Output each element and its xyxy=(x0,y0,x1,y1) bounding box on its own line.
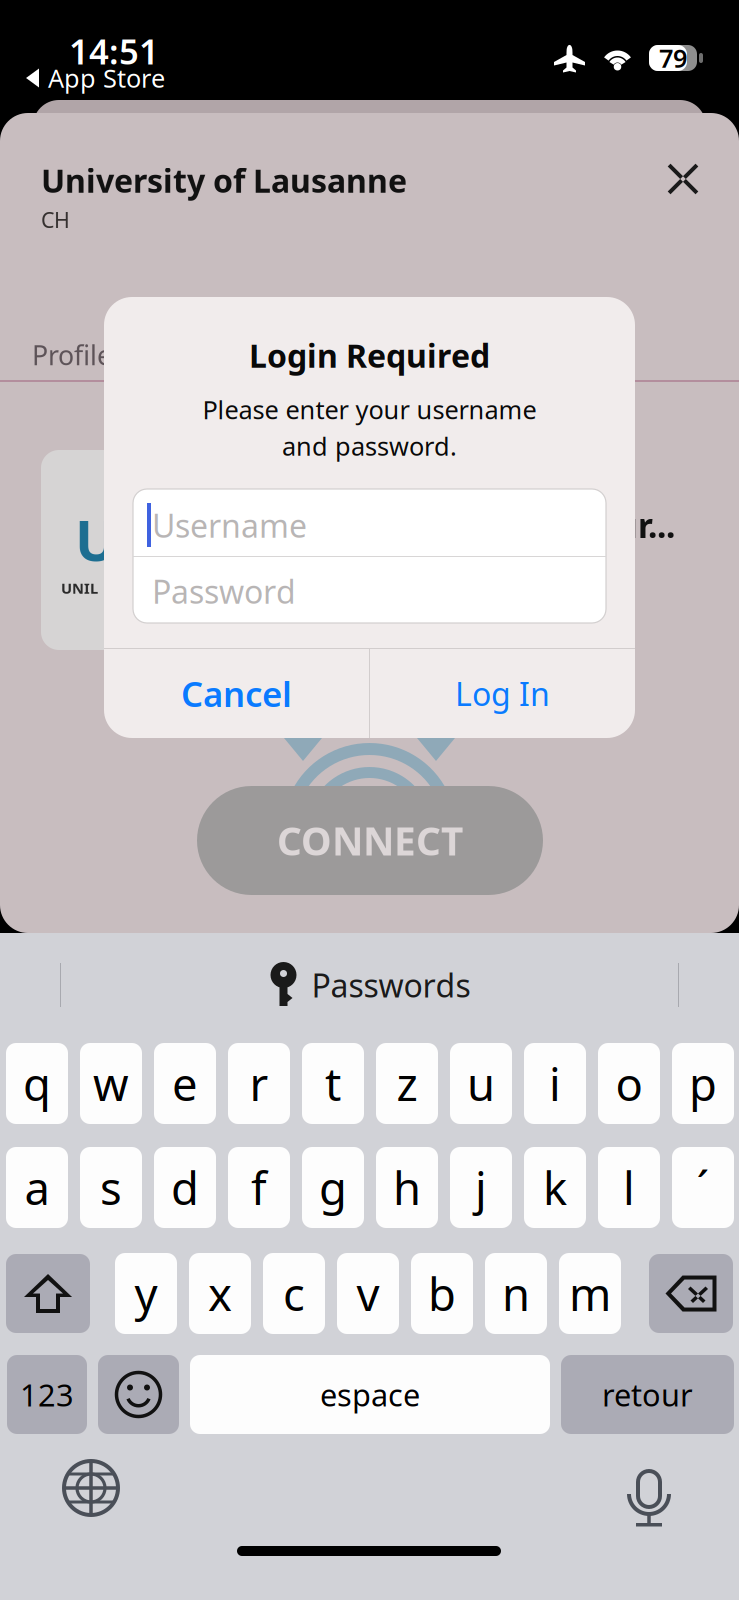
staticText: Log In xyxy=(455,672,550,715)
button[interactable]: w xyxy=(80,1043,142,1124)
staticText: 14:51 xyxy=(69,28,159,74)
button[interactable]: ´ xyxy=(672,1147,734,1228)
staticText: f xyxy=(251,1157,267,1218)
button[interactable]: r xyxy=(228,1043,290,1124)
button[interactable]: b xyxy=(411,1253,473,1334)
staticText: r xyxy=(249,1053,268,1114)
staticText: u xyxy=(467,1053,495,1114)
staticText: h xyxy=(393,1157,421,1218)
staticText: z xyxy=(396,1053,417,1114)
staticText: d xyxy=(171,1157,199,1218)
staticText: 79 xyxy=(659,41,687,75)
button[interactable]: x xyxy=(189,1253,251,1334)
staticText: Password xyxy=(152,570,296,612)
staticText: Mise à jour : 03.12.2023 xyxy=(248,573,578,612)
staticText: m xyxy=(569,1263,611,1324)
button[interactable]: v xyxy=(337,1253,399,1334)
staticText: y xyxy=(134,1263,157,1324)
staticText: espace xyxy=(320,1374,420,1415)
staticText: l xyxy=(623,1157,635,1218)
staticText: t xyxy=(325,1053,341,1114)
staticText: c xyxy=(283,1263,305,1324)
button[interactable]: Dictation xyxy=(612,1451,686,1525)
staticText: a xyxy=(24,1157,49,1218)
button[interactable]: Cancel xyxy=(104,649,369,738)
staticText: p xyxy=(689,1053,717,1114)
staticText: Unil xyxy=(75,502,187,576)
staticText: Login Required xyxy=(249,334,490,376)
button[interactable]: Emoji xyxy=(98,1355,179,1434)
button[interactable]: n xyxy=(485,1253,547,1334)
button[interactable]: e xyxy=(154,1043,216,1124)
button[interactable]: Next keyboard xyxy=(54,1451,128,1525)
staticText: g xyxy=(319,1157,347,1218)
staticText: Cancel xyxy=(181,670,292,716)
staticText: Passwords xyxy=(311,964,470,1006)
staticText: e xyxy=(172,1053,198,1114)
button[interactable]: f xyxy=(228,1147,290,1228)
button[interactable]: 123 xyxy=(7,1355,87,1434)
staticText: CH xyxy=(41,205,70,234)
button[interactable]: CONNECT xyxy=(197,786,543,895)
staticText: UNIL | UNIVERSITÉ xyxy=(61,578,201,598)
button[interactable]: q xyxy=(6,1043,68,1124)
button[interactable]: Shift xyxy=(6,1254,90,1333)
button[interactable]: u xyxy=(450,1043,512,1124)
button[interactable]: p xyxy=(672,1043,734,1124)
button[interactable]: c xyxy=(263,1253,325,1334)
button[interactable]: o xyxy=(598,1043,660,1124)
staticText: 123 xyxy=(20,1374,74,1415)
staticText: q xyxy=(23,1053,51,1114)
button[interactable]: Close xyxy=(652,150,714,208)
staticText: Réseau sans fil — valeur... xyxy=(248,503,675,547)
staticText: j xyxy=(475,1157,487,1218)
button[interactable]: Log In xyxy=(370,649,635,738)
button[interactable]: m xyxy=(559,1253,621,1334)
button[interactable]: Profile xyxy=(32,335,132,375)
staticText: o xyxy=(615,1053,642,1114)
staticText: retour xyxy=(602,1374,693,1415)
staticText: v xyxy=(356,1263,379,1324)
button[interactable]: Delete xyxy=(649,1254,733,1333)
button[interactable]: s xyxy=(80,1147,142,1228)
button[interactable]: d xyxy=(154,1147,216,1228)
button[interactable]: Passwords xyxy=(240,952,500,1018)
button[interactable]: g xyxy=(302,1147,364,1228)
staticText: Profile xyxy=(32,337,112,373)
button[interactable]: espace xyxy=(190,1355,550,1434)
button[interactable]: y xyxy=(115,1253,177,1334)
button[interactable]: retour xyxy=(561,1355,734,1434)
button[interactable]: z xyxy=(376,1043,438,1124)
button[interactable]: h xyxy=(376,1147,438,1228)
staticText: x xyxy=(208,1263,232,1324)
staticText: w xyxy=(93,1053,129,1114)
staticText: University of Lausanne xyxy=(41,159,407,201)
staticText: n xyxy=(502,1263,530,1324)
staticText: s xyxy=(100,1157,122,1218)
staticText: CONNECT xyxy=(277,815,463,866)
button[interactable]: k xyxy=(524,1147,586,1228)
button[interactable]: l xyxy=(598,1147,660,1228)
button[interactable]: App Store xyxy=(26,63,226,93)
staticText: k xyxy=(543,1157,567,1218)
staticText: Username xyxy=(152,504,307,546)
staticText: App Store xyxy=(48,61,165,95)
button[interactable]: j xyxy=(450,1147,512,1228)
staticText: ´ xyxy=(696,1157,709,1218)
staticText: and password. xyxy=(282,429,457,463)
button[interactable]: a xyxy=(6,1147,68,1228)
staticText: i xyxy=(549,1053,561,1114)
staticText: Please enter your username xyxy=(202,392,536,426)
button[interactable]: t xyxy=(302,1043,364,1124)
staticText: b xyxy=(428,1263,456,1324)
button[interactable]: i xyxy=(524,1043,586,1124)
